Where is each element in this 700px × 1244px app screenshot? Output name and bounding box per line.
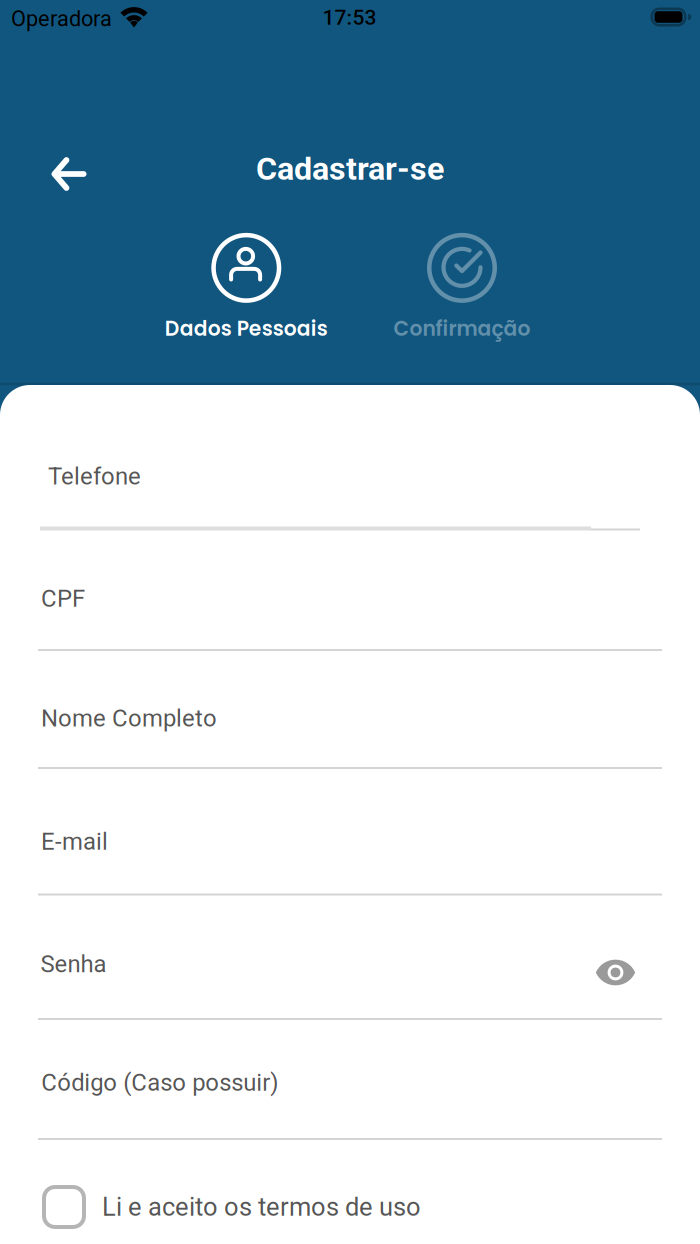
staticText: Telefone [38, 478, 130, 508]
staticText: CPF [38, 601, 78, 631]
staticText: 17:53 [322, 5, 376, 30]
textField[interactable]: Telefone [38, 478, 662, 508]
staticText: Dados Pessoais [165, 314, 328, 343]
staticText: Nome Completo [38, 719, 213, 749]
staticText: Código (Caso possuir) [38, 1090, 271, 1120]
staticText: E-mail [38, 845, 104, 875]
textField[interactable]: Nome Completo [38, 719, 662, 749]
button[interactable]: Voltar [47, 152, 91, 196]
textField[interactable]: CPF [38, 601, 662, 631]
staticText: Confirmação [393, 314, 530, 343]
button[interactable]: Mostrar senha [593, 957, 637, 987]
secureTextField[interactable]: Senha [38, 970, 662, 1000]
staticText: Senha [38, 970, 104, 1000]
textField[interactable]: Código (Caso possuir) [38, 1090, 662, 1120]
button[interactable]: Dados Pessoais [165, 233, 328, 343]
staticText: Li e aceito os termos de uso [102, 1192, 421, 1222]
button[interactable]: Li e aceito os termos de uso [42, 1185, 421, 1229]
staticText: Nome Completo [41, 704, 217, 732]
staticText: Código (Caso possuir) [41, 1068, 278, 1096]
button[interactable]: Confirmação [393, 233, 530, 343]
textField[interactable]: E-mail [38, 845, 662, 875]
staticText: Senha [40, 950, 106, 978]
staticText: Cadastrar-se [256, 150, 444, 188]
staticText: CPF [41, 584, 85, 612]
staticText: E-mail [41, 828, 108, 856]
staticText: Operadora [11, 6, 112, 31]
staticText: Telefone [48, 462, 141, 490]
